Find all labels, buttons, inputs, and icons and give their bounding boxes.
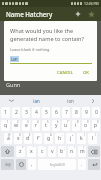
staticText: 1: [4, 109, 7, 116]
staticText: k: [80, 135, 83, 142]
button[interactable]: 2: [12, 107, 20, 118]
button[interactable]: ian: [19, 95, 53, 106]
staticText: a: [7, 135, 10, 142]
button[interactable]: 6: [52, 107, 60, 118]
button[interactable]: 2: [12, 120, 20, 131]
button[interactable]: 6: [52, 120, 60, 131]
staticText: *: [22, 146, 24, 150]
button[interactable]: Expand suggestions: [3, 95, 19, 106]
button[interactable]: -: [55, 133, 64, 144]
staticText: 4: [37, 120, 39, 124]
button[interactable]: 7: [62, 107, 70, 118]
staticText: Leave blank if nothing.: [10, 47, 51, 52]
button[interactable]: #: [14, 133, 22, 144]
staticText: i: [75, 122, 77, 129]
button[interactable]: 4: [32, 107, 40, 118]
button[interactable]: ;: [58, 146, 66, 157]
staticText: ;: [64, 146, 65, 150]
staticText: 5: [47, 120, 49, 124]
staticText: t: [45, 122, 47, 129]
staticText: y: [55, 122, 58, 129]
staticText: 7: [65, 109, 68, 116]
button[interactable]: 0: [92, 120, 100, 131]
staticText: 6: [55, 109, 58, 116]
staticText: 9: [87, 120, 89, 124]
button[interactable]: 1: [1, 107, 10, 118]
button[interactable]: *: [16, 146, 25, 157]
staticText: 0: [95, 109, 98, 116]
button[interactable]: _: [34, 133, 42, 144]
button[interactable]: 7: [62, 120, 70, 131]
button[interactable]: 3: [22, 120, 30, 131]
staticText: 4: [35, 109, 38, 116]
button[interactable]: :: [48, 146, 56, 157]
staticText: !: [74, 146, 75, 150]
staticText: OK: [83, 70, 89, 76]
staticText: 8: [77, 120, 79, 124]
staticText: r: [35, 122, 38, 129]
staticText: ion: [67, 98, 74, 104]
staticText: c: [41, 148, 44, 155]
button[interactable]: (: [77, 133, 86, 144]
button[interactable]: 0: [92, 107, 100, 118]
staticText: m: [80, 148, 85, 155]
button[interactable]: More suggestions: [88, 95, 98, 106]
button[interactable]: Gunn: [0, 81, 101, 88]
button[interactable]: Backspace: [88, 146, 100, 157]
staticText: n: [70, 148, 74, 155]
staticText: h: [58, 135, 62, 142]
staticText: &: [50, 133, 52, 137]
button[interactable]: 5: [42, 120, 50, 131]
button[interactable]: ian: [10, 55, 92, 64]
button[interactable]: 8: [72, 120, 80, 131]
staticText: :: [54, 146, 55, 150]
button[interactable]: ,: [28, 159, 36, 170]
button[interactable]: &: [44, 133, 53, 144]
staticText: ian: [33, 98, 40, 104]
staticText: Name Hatchery: [6, 10, 53, 18]
staticText: $: [29, 133, 31, 137]
button[interactable]: +: [66, 133, 75, 144]
button[interactable]: ): [88, 133, 97, 144]
button[interactable]: 9: [82, 120, 90, 131]
button[interactable]: $: [24, 133, 32, 144]
button[interactable]: ": [27, 146, 36, 157]
button[interactable]: OK: [80, 68, 92, 78]
button[interactable]: 9: [82, 107, 90, 118]
staticText: 6: [57, 120, 59, 124]
staticText: b: [60, 148, 64, 155]
staticText: !#@: [5, 163, 11, 167]
staticText: What would you like the generated name t…: [10, 27, 92, 43]
button[interactable]: Emoji: [16, 159, 26, 170]
staticText: f: [37, 135, 39, 142]
staticText: ian: [11, 56, 18, 62]
staticText: -: [62, 133, 63, 137]
staticText: .: [81, 161, 83, 168]
button[interactable]: 5: [42, 107, 50, 118]
button[interactable]: ion: [53, 95, 88, 106]
button[interactable]: CANCEL: [54, 68, 76, 78]
staticText: 5: [45, 109, 48, 116]
button[interactable]: ': [38, 146, 46, 157]
button[interactable]: !: [68, 146, 76, 157]
staticText: ?: [83, 146, 85, 150]
button[interactable]: Enter: [88, 159, 100, 170]
staticText: 1: [7, 120, 9, 124]
button[interactable]: 8: [72, 107, 80, 118]
button[interactable]: Space: [38, 159, 76, 170]
button[interactable]: ?: [78, 146, 86, 157]
staticText: (: [84, 133, 85, 137]
staticText: g: [47, 135, 51, 142]
staticText: w: [14, 122, 18, 129]
button[interactable]: 4: [32, 120, 40, 131]
button[interactable]: Favorites: [85, 8, 97, 20]
button[interactable]: .: [78, 159, 86, 170]
button[interactable]: @: [4, 133, 12, 144]
button[interactable]: 3: [22, 107, 30, 118]
staticText: ': [44, 146, 45, 150]
button[interactable]: 1: [1, 120, 10, 131]
staticText: j: [70, 135, 72, 142]
button[interactable]: Shift: [1, 146, 14, 157]
button[interactable]: Add: [72, 8, 84, 20]
button[interactable]: Symbols: [1, 159, 14, 170]
